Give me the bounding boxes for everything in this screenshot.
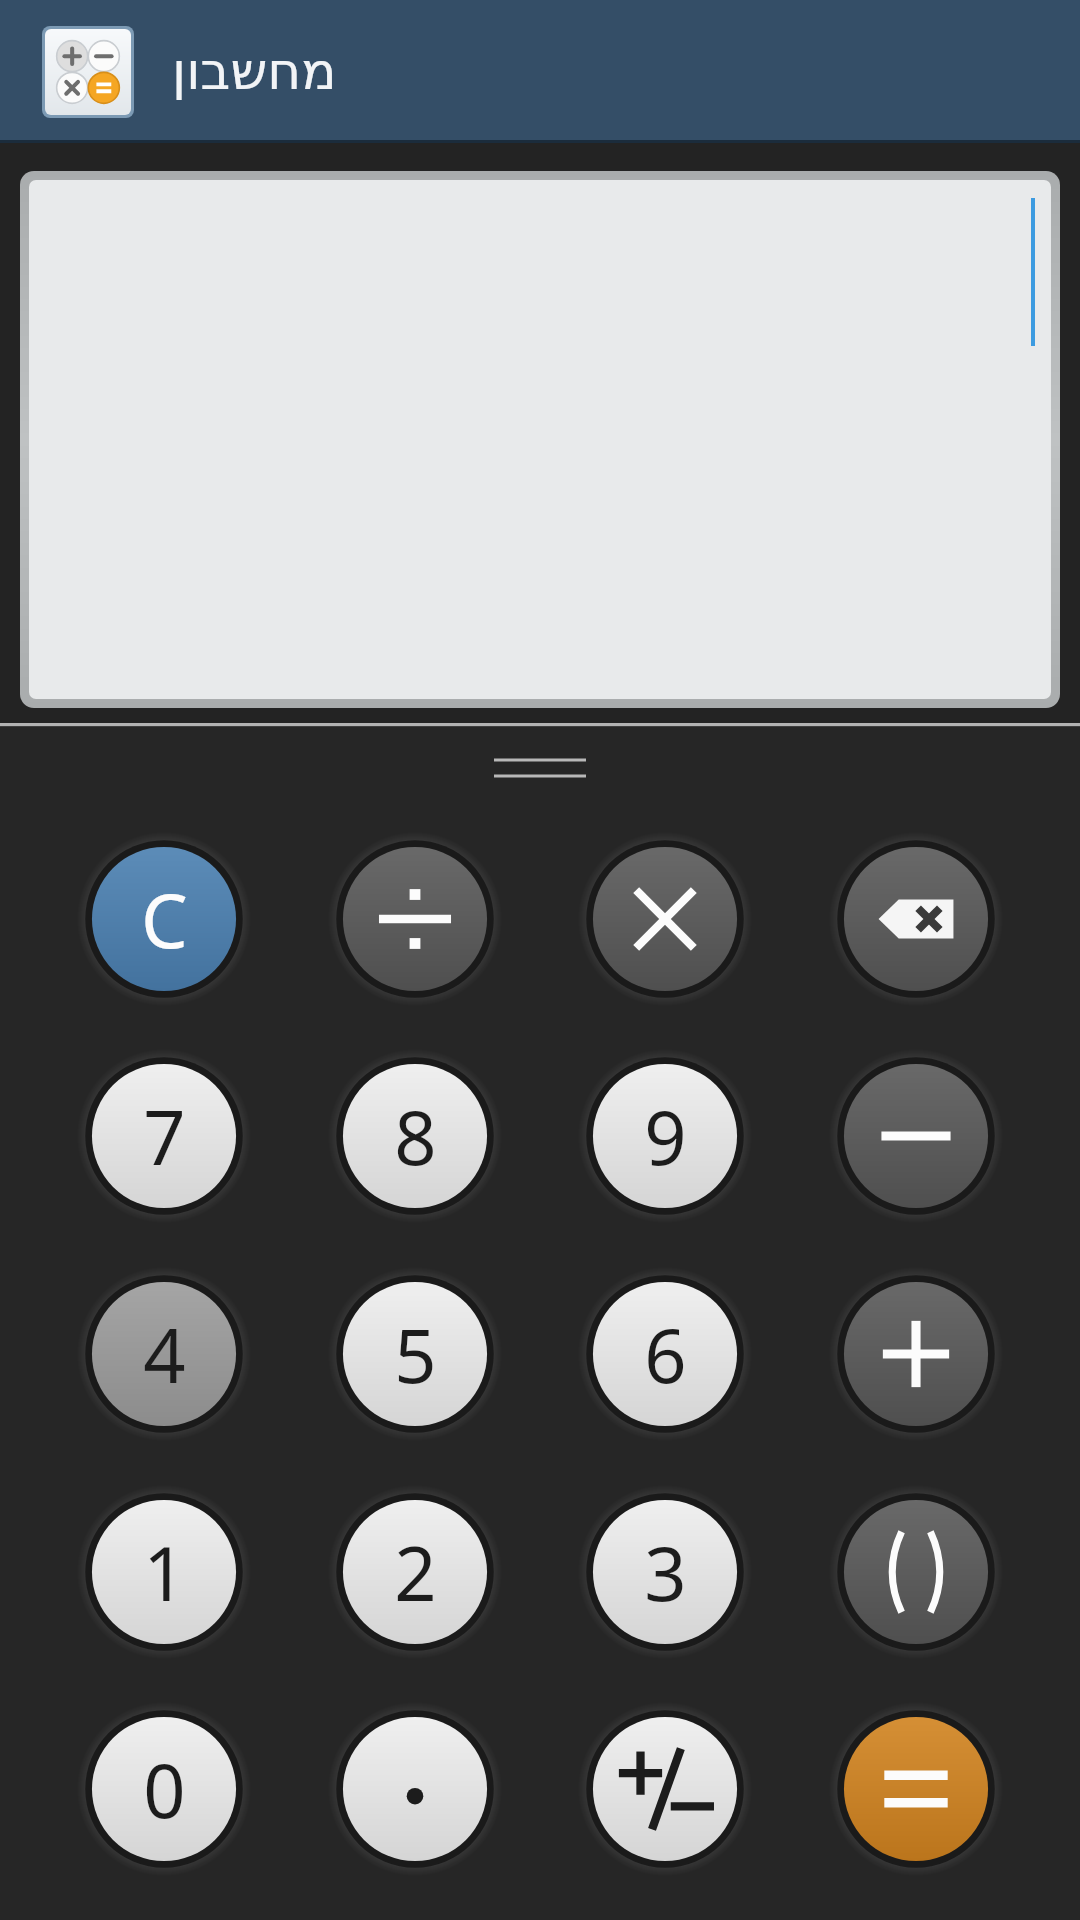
button[interactable]: 6: [578, 1267, 752, 1441]
button[interactable]: 1: [77, 1485, 251, 1659]
staticText: 4: [143, 1304, 186, 1405]
button[interactable]: 3: [578, 1485, 752, 1659]
button[interactable]: 5: [328, 1267, 502, 1441]
button[interactable]: 2: [328, 1485, 502, 1659]
staticText: 7: [143, 1086, 186, 1187]
staticText: מחשבון: [172, 41, 337, 102]
staticText: 5: [394, 1304, 437, 1405]
button[interactable]: Parentheses: [829, 1485, 1003, 1659]
button[interactable]: Resize: [494, 754, 586, 776]
button[interactable]: Multiply: [578, 832, 752, 1006]
button[interactable]: Minus: [829, 1049, 1003, 1223]
staticText: 2: [394, 1522, 437, 1623]
button[interactable]: Divide: [328, 832, 502, 1006]
button[interactable]: Plus: [829, 1267, 1003, 1441]
staticText: 9: [644, 1086, 687, 1187]
button[interactable]: C: [77, 832, 251, 1006]
staticText: C: [141, 869, 188, 970]
button[interactable]: 8: [328, 1049, 502, 1223]
staticText: 8: [394, 1086, 437, 1187]
staticText: 3: [644, 1522, 687, 1623]
staticText: 0: [143, 1739, 186, 1840]
button[interactable]: 9: [578, 1049, 752, 1223]
button[interactable]: Decimal point: [328, 1702, 502, 1876]
staticText: 1: [143, 1522, 186, 1623]
button[interactable]: Sign: [578, 1702, 752, 1876]
button[interactable]: 0: [77, 1702, 251, 1876]
button[interactable]: 7: [77, 1049, 251, 1223]
button[interactable]: Backspace: [829, 832, 1003, 1006]
button[interactable]: 4: [77, 1267, 251, 1441]
staticText: 6: [644, 1304, 687, 1405]
button[interactable]: Equals: [829, 1702, 1003, 1876]
